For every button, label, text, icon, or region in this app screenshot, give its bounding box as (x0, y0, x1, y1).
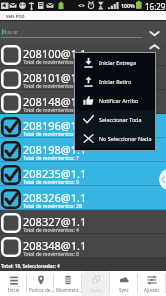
button[interactable]: Siguiente (147, 26, 161, 40)
button[interactable]: 208148@1.1 (0, 90, 166, 114)
staticText: Total de movimientos: 7 (23, 155, 79, 162)
staticText: 208100@1.1 (23, 46, 87, 61)
button[interactable]: Seleccionar Toda (75, 110, 155, 129)
staticText: Notificar Arribo (99, 97, 139, 104)
staticText: Total de movimientos: 4 (23, 131, 79, 138)
button[interactable]: Iniciar Retiro (75, 72, 155, 91)
button[interactable]: Iniciar Entrega (75, 53, 155, 72)
staticText: Buscar (3, 29, 19, 36)
button[interactable]: 208235@1.1 (0, 162, 166, 186)
staticText: 208327@1.1 (23, 214, 87, 229)
staticText: Total de movimientos: 6 (23, 59, 79, 66)
staticText: 208148@1.1 (23, 94, 87, 109)
staticText: Total de movimientos: 28 (23, 203, 82, 210)
button[interactable]: Abrir panel lateral (159, 169, 166, 190)
button[interactable]: 208326@1.1 (0, 186, 166, 210)
staticText: Seleccionar Toda (99, 116, 142, 123)
button[interactable]: 208100@1.1 (0, 42, 166, 66)
staticText: SMS POD (6, 14, 25, 20)
button[interactable]: No Seleccionar Nada (75, 129, 155, 148)
staticText: Ajustes (144, 287, 160, 293)
staticText: Total de movimientos: 6 (23, 251, 79, 258)
staticText: Sync (119, 287, 129, 293)
button[interactable]: Ajustes (138, 271, 166, 296)
staticText: 208326@1.1 (23, 190, 87, 205)
staticText: No Seleccionar Nada (99, 135, 152, 142)
button[interactable]: 208101@1.1 (0, 66, 166, 90)
staticText: 208198@1.1 (23, 142, 87, 157)
staticText: 208348@1.1 (23, 238, 87, 253)
staticText: 16:29 (145, 1, 166, 12)
staticText: Total de movimientos: 9 (23, 107, 79, 114)
button[interactable]: 208196@1.1 (0, 114, 166, 138)
staticText: Total de movimientos: 4 (23, 227, 79, 234)
button[interactable]: Anterior (147, 39, 161, 53)
staticText: Puntos de.. (29, 287, 53, 293)
button[interactable]: Notificar Arribo (75, 91, 155, 110)
staticText: Inicio (8, 287, 20, 293)
staticText: Total de movimientos: 9 (23, 179, 79, 186)
staticText: Movimient.. (56, 287, 81, 293)
button[interactable]: Guias (82, 271, 110, 296)
button[interactable]: 208198@1.1 (0, 138, 166, 162)
staticText: 208101@1.1 (23, 70, 87, 85)
button[interactable]: 208327@1.1 (0, 210, 166, 234)
button[interactable]: Sync (110, 271, 138, 296)
staticText: Guias (90, 287, 102, 293)
button[interactable]: Movimient.. (54, 271, 82, 296)
staticText: 208196@1.1 (23, 118, 87, 133)
staticText: Iniciar Entrega (99, 59, 136, 66)
staticText: Total de movimientos: 6 (23, 83, 79, 90)
button[interactable]: Puntos de.. (27, 271, 54, 296)
staticText: 100% (121, 2, 135, 9)
button[interactable]: Inicio (0, 271, 27, 296)
staticText: 208235@1.1 (23, 166, 87, 181)
staticText: Total: 18, Seleccionadas: 4 (1, 263, 60, 269)
button[interactable]: 208348@1.1 (0, 234, 166, 258)
staticText: Iniciar Retiro (99, 78, 132, 85)
